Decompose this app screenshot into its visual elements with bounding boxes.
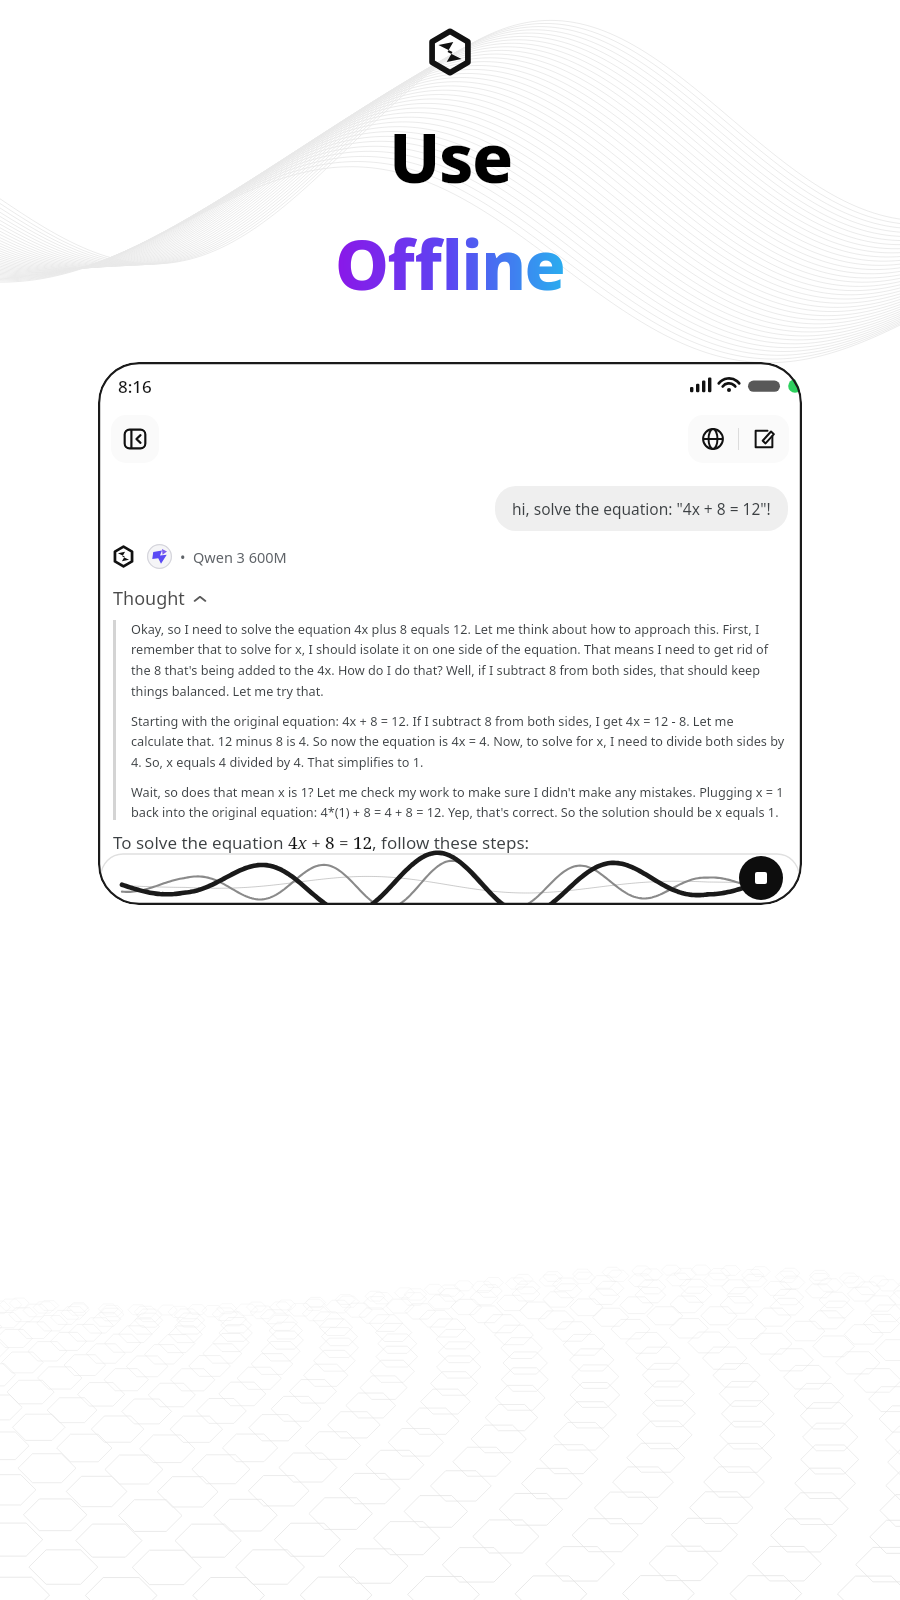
staticText: Okay, so I need to solve the equation 4x… — [131, 620, 788, 700]
staticText: Wait, so does that mean x is 1? Let me c… — [131, 783, 788, 820]
staticText: Thought — [113, 586, 185, 611]
button[interactable]: Collapse sidebar — [111, 415, 159, 463]
staticText: hi, solve the equation: "4x + 8 = 12"! — [512, 498, 771, 519]
button[interactable]: hi, solve the equation: "4x + 8 = 12"! — [495, 486, 788, 531]
staticText: To solve the equation 4x + 8 = 12, follo… — [113, 831, 530, 854]
button[interactable]: Thought — [113, 584, 206, 613]
button[interactable]: Stop — [739, 856, 783, 900]
button[interactable]: New chat — [739, 415, 789, 463]
staticText: Offline — [335, 217, 565, 310]
staticText: • Qwen 3 600M — [180, 547, 287, 567]
staticText: Use — [389, 110, 512, 203]
staticText: Starting with the original equation: 4x … — [131, 712, 788, 771]
staticText: 8:16 — [118, 375, 152, 398]
button[interactable]: Web search — [688, 415, 738, 463]
